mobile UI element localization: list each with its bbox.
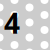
staticText: 4 xyxy=(4,4,20,42)
